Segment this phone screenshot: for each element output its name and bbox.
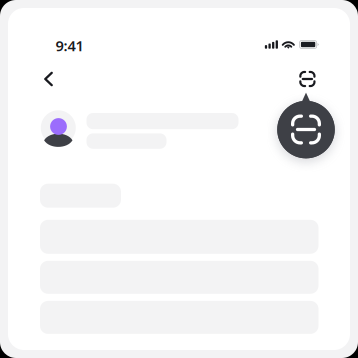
button[interactable]: Scan code	[292, 64, 322, 94]
button[interactable]: Scan code	[271, 92, 341, 162]
staticText: 9:41	[55, 36, 83, 55]
button[interactable]: Back	[33, 64, 63, 94]
